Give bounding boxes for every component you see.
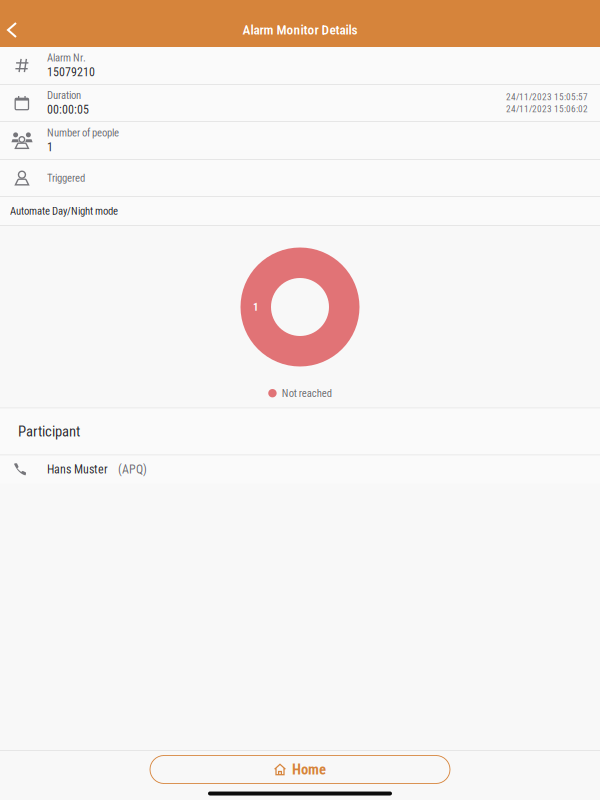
staticText: 24/11/2023 15:05:57 [506,92,588,102]
staticText: 15079210 [47,65,95,79]
button[interactable]: Hans Muster [0,455,600,483]
staticText: (APQ) [118,462,147,477]
staticText: Automate Day/Night mode [10,205,118,217]
staticText: 1 [253,301,258,313]
staticText: Alarm Nr. [47,52,86,64]
button[interactable]: Back [0,13,28,47]
staticText: Alarm Monitor Details [242,22,357,38]
staticText: 00:00:05 [47,103,89,117]
button[interactable]: Home [150,755,450,783]
staticText: Number of people [47,127,119,139]
staticText: Not reached [282,387,332,399]
staticText: 1 [47,140,53,154]
staticText: Home [292,761,326,778]
staticText: Triggered [47,172,85,184]
staticText: Hans Muster [47,462,108,477]
staticText: Participant [18,423,80,440]
staticText: Duration [47,89,81,102]
staticText: 24/11/2023 15:06:02 [506,103,588,114]
